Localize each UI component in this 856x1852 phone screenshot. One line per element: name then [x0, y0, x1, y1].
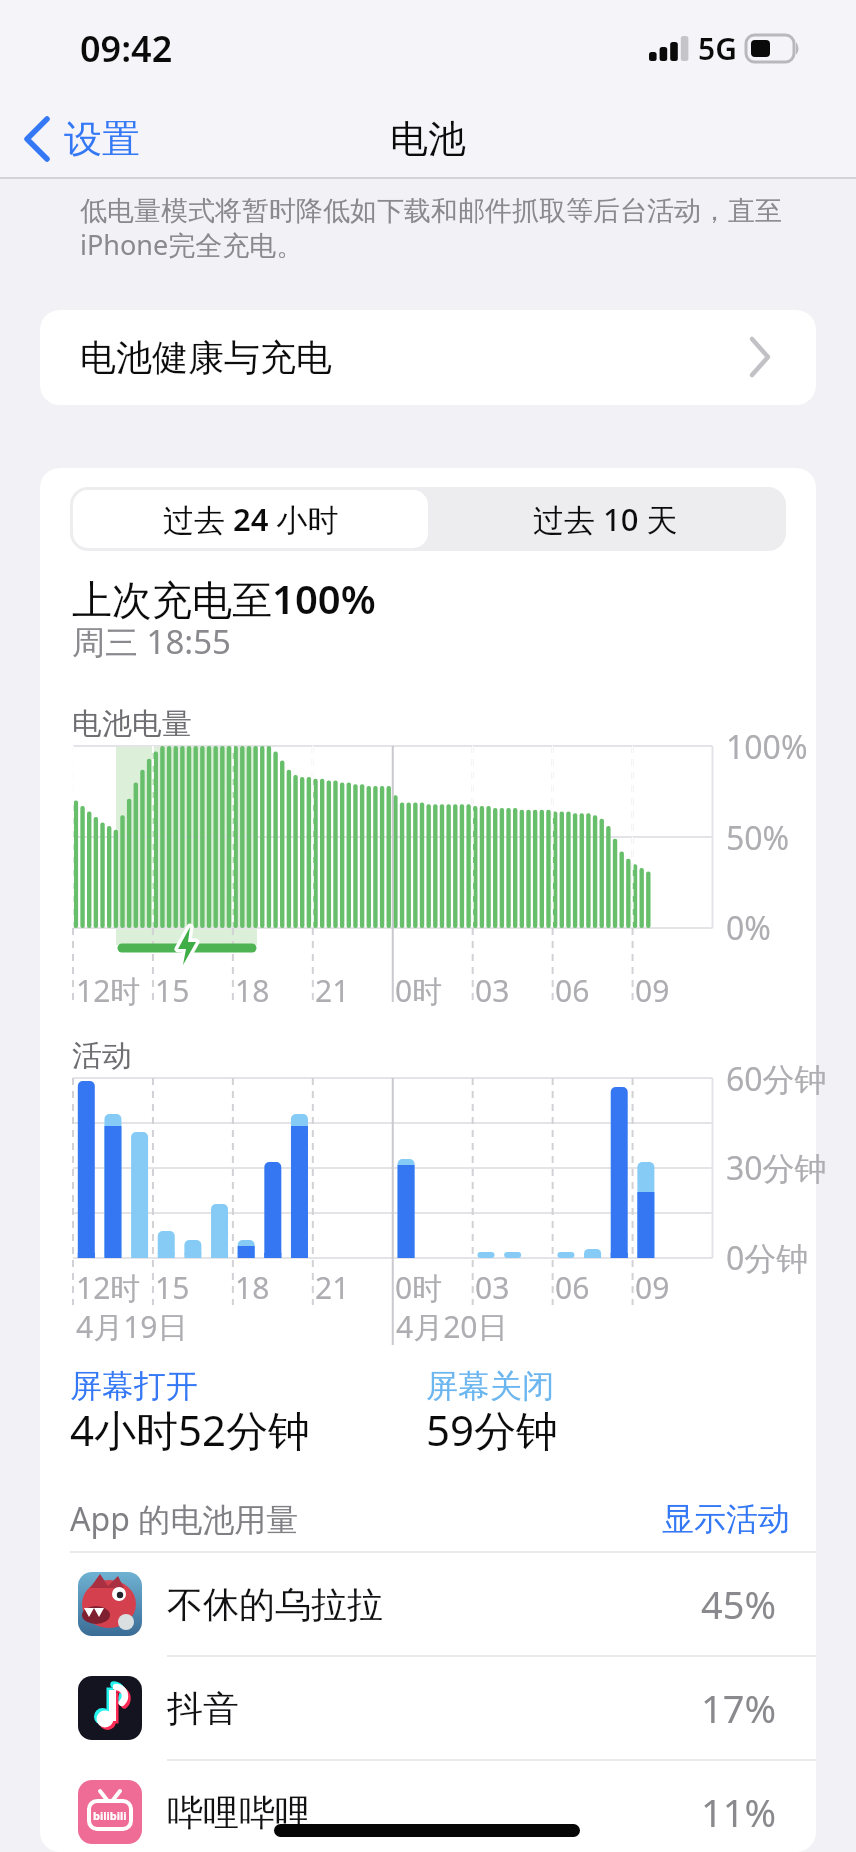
staticText: 0分钟 [726, 1236, 809, 1280]
staticText: 显示活动 [662, 1499, 790, 1539]
staticText: 屏幕打开 [70, 1366, 198, 1406]
staticText: 60分钟 [726, 1057, 827, 1101]
staticText: 4月19日 [76, 1306, 188, 1347]
button[interactable] [60, 115, 180, 163]
staticText: 18 [235, 970, 270, 1011]
staticText: 21 [315, 1267, 350, 1308]
staticText: iPhone完全充电。 [80, 226, 304, 263]
staticText: bilibili [93, 1808, 127, 1823]
staticText: 06 [555, 970, 590, 1011]
button[interactable]: 过去 24 小时 [73, 490, 428, 548]
staticText: 03 [475, 970, 510, 1011]
staticText: 17% [701, 1682, 777, 1734]
staticText: 4小时52分钟 [70, 1401, 311, 1458]
staticText: 21 [315, 970, 350, 1011]
staticText: 4月20日 [396, 1306, 508, 1347]
button[interactable]: 电池健康与充电 [40, 310, 816, 405]
staticText: 45% [701, 1578, 777, 1630]
staticText: 电池 [390, 115, 466, 163]
staticText: 15 [155, 1267, 190, 1308]
staticText: App 的电池用量 [70, 1497, 299, 1541]
button[interactable]: 不休的乌拉拉 [40, 1552, 816, 1656]
button[interactable]: 过去 10 天 [428, 490, 783, 548]
staticText: 设置 [64, 115, 140, 163]
staticText: 电池健康与充电 [80, 335, 332, 380]
staticText: 过去 24 小时 [163, 498, 339, 540]
staticText: 03 [475, 1267, 510, 1308]
staticText: 06 [555, 1267, 590, 1308]
staticText: 5G [698, 28, 737, 69]
staticText: 12时 [76, 1267, 141, 1308]
staticText: 哔哩哔哩 [167, 1790, 311, 1835]
button[interactable]: 显示活动 [640, 1489, 790, 1549]
staticText: 12时 [76, 970, 141, 1011]
button[interactable]: bilibili [40, 1760, 816, 1852]
staticText: 11% [701, 1786, 777, 1838]
staticText: 15 [155, 970, 190, 1011]
staticText: 抖音 [167, 1686, 239, 1731]
staticText: 100% [726, 725, 808, 769]
staticText: 0时 [395, 1267, 443, 1308]
staticText: 上次充电至100% [72, 571, 376, 626]
staticText: 09 [635, 1267, 670, 1308]
staticText: 过去 10 天 [533, 498, 678, 540]
staticText: 不休的乌拉拉 [167, 1582, 383, 1627]
staticText: 09 [635, 970, 670, 1011]
staticText: 0时 [395, 970, 443, 1011]
staticText: 屏幕关闭 [426, 1366, 554, 1406]
staticText: 电池电量 [72, 705, 192, 743]
staticText: 30分钟 [726, 1146, 827, 1190]
staticText: 59分钟 [426, 1401, 559, 1458]
staticText: 低电量模式将暂时降低如下载和邮件抓取等后台活动，直至 [80, 194, 782, 228]
button[interactable]: 抖音 [40, 1656, 816, 1760]
staticText: 0% [726, 906, 771, 950]
staticText: 18 [235, 1267, 270, 1308]
staticText: 50% [726, 816, 790, 860]
staticText: 活动 [72, 1037, 132, 1075]
staticText: 周三 18:55 [72, 619, 231, 664]
staticText: 09:42 [80, 24, 173, 73]
